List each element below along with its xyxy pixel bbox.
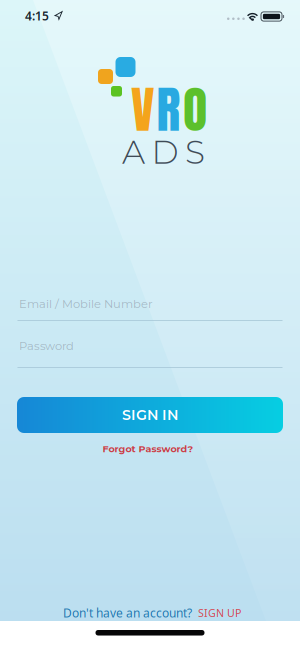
staticText: R	[156, 72, 180, 147]
staticText: 4:15	[25, 8, 49, 24]
button[interactable]: SIGN UP	[198, 606, 241, 620]
staticText: Password	[19, 339, 74, 353]
button[interactable]: Forgot Password?	[102, 443, 193, 455]
staticText: ADS	[122, 132, 205, 172]
staticText: V	[131, 72, 154, 147]
staticText: Email / Mobile Number	[19, 297, 153, 311]
staticText: Forgot Password?	[102, 443, 193, 455]
staticText: SIGN UP	[198, 606, 241, 620]
staticText: SIGN IN	[122, 406, 178, 424]
staticText: O	[183, 72, 207, 147]
button[interactable]: SIGN IN	[17, 397, 283, 433]
staticText: Don't have an account?	[63, 605, 192, 621]
